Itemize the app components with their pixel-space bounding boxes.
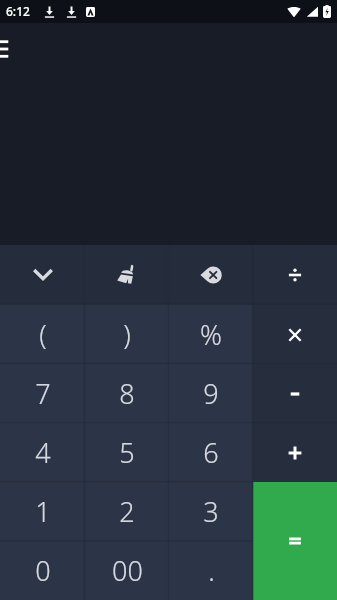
button[interactable]: ) [85, 305, 169, 364]
staticText: 5 [119, 434, 135, 471]
button[interactable]: 5 [85, 423, 169, 482]
staticText: 7 [35, 375, 51, 412]
staticText: . [208, 552, 215, 589]
staticText: 00 [112, 552, 143, 589]
staticText: ) [123, 316, 131, 353]
button[interactable]: 0 [0, 541, 85, 600]
staticText: 8 [119, 375, 135, 412]
button[interactable]: 1 [0, 482, 85, 541]
button[interactable]: Divide [253, 245, 337, 305]
button[interactable]: Plus [253, 423, 337, 482]
button[interactable]: 6 [169, 423, 253, 482]
staticText: 1 [35, 493, 51, 530]
staticText: 9 [203, 375, 219, 412]
button[interactable]: Multiply [253, 305, 337, 364]
staticText: 6:12 [6, 3, 30, 19]
staticText: 4 [35, 434, 51, 471]
button[interactable]: Backspace [169, 245, 253, 305]
button[interactable]: Collapse [0, 245, 85, 305]
staticText: 2 [119, 493, 135, 530]
button[interactable]: 00 [85, 541, 169, 600]
staticText: 6 [203, 434, 219, 471]
button[interactable]: Minus [253, 364, 337, 423]
button[interactable]: Menu [0, 34, 24, 62]
button[interactable]: Equals [253, 482, 337, 600]
button[interactable]: 7 [0, 364, 85, 423]
staticText: % [200, 316, 222, 353]
button[interactable]: . [169, 541, 253, 600]
button[interactable]: Clear all [85, 245, 169, 305]
button[interactable]: ( [0, 305, 85, 364]
button[interactable]: 9 [169, 364, 253, 423]
button[interactable]: % [169, 305, 253, 364]
staticText: 0 [35, 552, 51, 589]
button[interactable]: 3 [169, 482, 253, 541]
button[interactable]: 8 [85, 364, 169, 423]
button[interactable]: 2 [85, 482, 169, 541]
staticText: ( [39, 316, 47, 353]
staticText: 3 [203, 493, 219, 530]
button[interactable]: 4 [0, 423, 85, 482]
